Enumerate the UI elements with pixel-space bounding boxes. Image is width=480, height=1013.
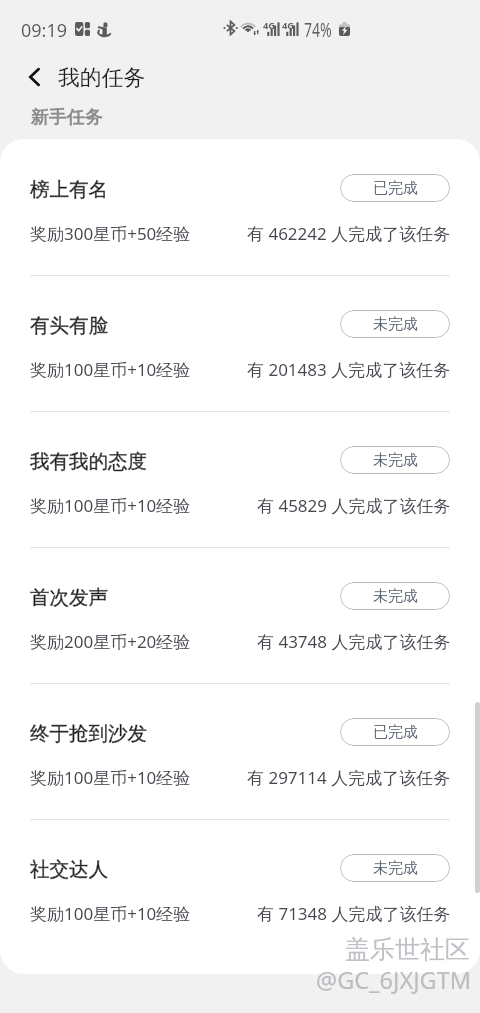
button[interactable]: Back [13, 57, 55, 97]
staticText: 我的任务 [58, 64, 146, 91]
staticText: 有头有脸 [30, 313, 108, 338]
button[interactable]: 有头有脸 [0, 275, 480, 411]
staticText: 74% [304, 17, 332, 43]
button[interactable]: 榜上有名 [0, 139, 480, 275]
staticText: 有 297114 人完成了该任务 [247, 766, 451, 789]
button[interactable]: 未完成 [340, 582, 450, 610]
button[interactable]: 已完成 [340, 718, 450, 746]
button[interactable]: 已完成 [340, 174, 450, 202]
staticText: 我有我的态度 [30, 449, 147, 474]
staticText: 榜上有名 [30, 177, 108, 202]
staticText: 已完成 [373, 723, 418, 742]
button[interactable]: 社交达人 [0, 819, 480, 955]
staticText: 奖励300星币+50经验 [30, 222, 191, 245]
staticText: 新手任务 [31, 106, 103, 129]
button[interactable]: 未完成 [340, 310, 450, 338]
staticText: 未完成 [373, 587, 418, 606]
staticText: 有 43748 人完成了该任务 [257, 630, 451, 653]
staticText: 首次发声 [30, 585, 108, 610]
staticText: 未完成 [373, 315, 418, 334]
staticText: 社交达人 [30, 857, 108, 882]
staticText: 奖励100星币+10经验 [30, 494, 191, 517]
button[interactable]: 未完成 [340, 854, 450, 882]
staticText: 未完成 [373, 859, 418, 878]
staticText: 奖励200星币+20经验 [30, 630, 191, 653]
button[interactable]: 我有我的态度 [0, 411, 480, 547]
staticText: 奖励100星币+10经验 [30, 766, 191, 789]
staticText: 有 201483 人完成了该任务 [247, 358, 451, 381]
staticText: 首次发声 [30, 585, 108, 610]
staticText: 奖励100星币+10经验 [30, 358, 191, 381]
staticText: 有头有脸 [30, 313, 108, 338]
button[interactable]: 首次发声 [0, 547, 480, 683]
staticText: 未完成 [373, 451, 418, 470]
staticText: 已完成 [373, 179, 418, 198]
staticText: 我有我的态度 [30, 449, 147, 474]
staticText: 奖励100星币+10经验 [30, 902, 191, 925]
staticText: 4G [263, 19, 275, 30]
button[interactable]: 未完成 [340, 446, 450, 474]
staticText: 新手任务 [31, 106, 103, 129]
staticText: 09:19 [21, 18, 68, 43]
staticText: 盖乐世社区 [345, 934, 470, 965]
button[interactable]: 终于抢到沙发 [0, 683, 480, 819]
staticText: 4G [282, 19, 294, 30]
staticText: @GC_6JXJGTM [316, 964, 472, 996]
staticText: 有 462242 人完成了该任务 [247, 222, 451, 245]
staticText: 有 71348 人完成了该任务 [257, 902, 451, 925]
staticText: 社交达人 [30, 857, 108, 882]
staticText: 榜上有名 [30, 177, 108, 202]
staticText: 终于抢到沙发 [30, 721, 147, 746]
staticText: 终于抢到沙发 [30, 721, 147, 746]
staticText: 有 45829 人完成了该任务 [257, 494, 451, 517]
